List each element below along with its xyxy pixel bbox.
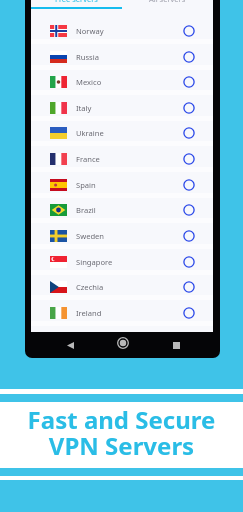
button[interactable]: Norway: [31, 18, 213, 44]
staticText: France: [76, 154, 100, 164]
button[interactable]: Back: [67, 342, 74, 349]
staticText: Mexico: [76, 77, 102, 87]
button[interactable]: Italy: [31, 95, 213, 121]
staticText: Russia: [76, 52, 99, 62]
staticText: Brazil: [76, 205, 96, 215]
button[interactable]: Home: [117, 337, 129, 349]
button[interactable]: Ukraine: [31, 120, 213, 146]
button[interactable]: All servers: [122, 0, 213, 9]
button[interactable]: Singapore: [31, 249, 213, 275]
staticText: Sweden: [76, 231, 105, 241]
staticText: All servers: [149, 0, 186, 4]
staticText: Ireland: [76, 308, 102, 318]
button[interactable]: Czechia: [31, 274, 213, 300]
staticText: Italy: [76, 103, 92, 113]
button[interactable]: France: [31, 146, 213, 172]
staticText: Free servers: [55, 0, 98, 4]
button[interactable]: Brazil: [31, 197, 213, 223]
staticText: Spain: [76, 180, 96, 190]
button[interactable]: Spain: [31, 172, 213, 198]
button[interactable]: Russia: [31, 44, 213, 70]
button[interactable]: Free servers: [31, 0, 122, 9]
button[interactable]: Sweden: [31, 223, 213, 249]
staticText: Singapore: [76, 257, 113, 267]
button[interactable]: Ireland: [31, 300, 213, 326]
staticText: Czechia: [76, 282, 104, 292]
button[interactable]: Mexico: [31, 69, 213, 95]
staticText: Norway: [76, 26, 104, 36]
staticText: Ukraine: [76, 128, 104, 138]
staticText: Fast and Secure VPN Servers: [0, 403, 243, 462]
